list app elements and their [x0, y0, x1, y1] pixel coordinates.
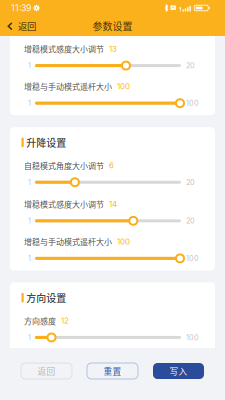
button[interactable]: 重置	[87, 363, 138, 379]
staticText: 12	[61, 316, 69, 325]
staticText: 返回	[18, 19, 36, 33]
staticText: 增稳与手动模式遥杆大小	[24, 81, 112, 92]
staticText: 1	[28, 333, 31, 342]
button[interactable]: 返回	[21, 363, 72, 379]
staticText: 20	[186, 178, 195, 187]
staticText: 100	[186, 254, 199, 263]
staticText: 14	[109, 199, 117, 209]
button[interactable]: 返回	[0, 16, 43, 36]
staticText: 1	[28, 178, 31, 187]
staticText: 1	[28, 216, 31, 225]
staticText: 增稳与手动模式遥杆大小	[24, 236, 112, 247]
staticText: 写入	[169, 365, 187, 377]
staticText: 1	[28, 99, 31, 108]
staticText: 1	[28, 61, 31, 70]
staticText: 11:39	[11, 3, 31, 13]
staticText: 自稳模式角度大小调节	[24, 160, 104, 171]
staticText: 20	[186, 61, 195, 70]
staticText: 方向设置	[26, 290, 66, 305]
staticText: 方向感度	[24, 315, 56, 326]
staticText: 1	[28, 254, 31, 263]
staticText: 参数设置	[92, 19, 132, 33]
staticText: 100	[117, 237, 130, 246]
staticText: 升降设置	[26, 135, 66, 150]
staticText: 增稳模式感度大小调节	[24, 198, 104, 210]
staticText: 增稳模式感度大小调节	[24, 43, 104, 55]
staticText: 100	[186, 99, 199, 108]
staticText: 重置	[103, 365, 121, 377]
staticText: 13	[109, 44, 117, 54]
staticText: 返回	[37, 365, 55, 377]
staticText: 100	[117, 81, 130, 91]
staticText: 100	[186, 333, 199, 342]
staticText: 6	[109, 161, 114, 170]
staticText: 20	[186, 216, 195, 225]
button[interactable]: 写入	[153, 363, 204, 379]
